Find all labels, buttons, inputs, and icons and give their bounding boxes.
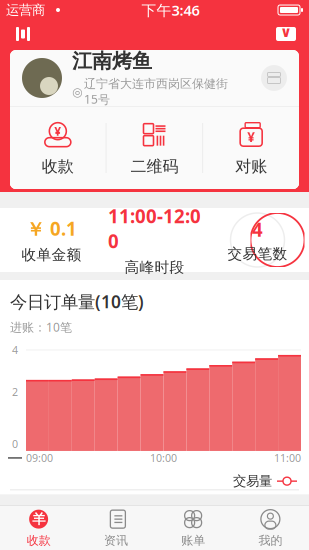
staticText: 0 (12, 437, 18, 451)
staticText: 下午3:46 (141, 0, 199, 20)
button[interactable]: 羊 (0, 506, 77, 550)
button[interactable]: 江南烤鱼 (10, 50, 299, 106)
staticText: 交易量 (233, 473, 272, 489)
staticText: 高峰时段 (124, 258, 184, 276)
button[interactable]: 二维码 (107, 107, 202, 189)
staticText: 二维码 (130, 157, 178, 176)
staticText: 收款 (27, 533, 51, 548)
staticText: 10:00 (150, 451, 177, 465)
staticText: 羊 (32, 511, 45, 527)
staticText: 运营商 (6, 2, 45, 18)
staticText: ∨ (280, 24, 292, 40)
staticText: ◎ (72, 85, 82, 99)
staticText: 交易笔数 (227, 245, 287, 263)
button[interactable]: 账单 (154, 506, 232, 550)
staticText: 11:00-12:00 (108, 204, 201, 253)
staticText: 4 (252, 217, 263, 242)
staticText: 2 (12, 385, 18, 399)
staticText: 账单 (181, 533, 205, 548)
staticText: 辽宁省大连市西岗区保健街15号 (84, 76, 228, 107)
staticText: 收单金额 (21, 246, 81, 264)
staticText: ¥ (247, 128, 255, 146)
button[interactable]: 首页 (8, 23, 38, 45)
staticText: 我的 (258, 533, 282, 548)
staticText: ¥ (54, 123, 61, 139)
staticText: 4 (12, 343, 18, 357)
staticText: 对账 (235, 157, 267, 176)
staticText: ￥ 0.1 (26, 216, 77, 241)
button[interactable]: 我的 (232, 506, 309, 550)
button[interactable]: ¥ (203, 107, 299, 189)
staticText: 收款 (42, 157, 74, 176)
button[interactable]: 消息 (271, 23, 301, 45)
button[interactable]: ¥ (10, 107, 106, 189)
staticText: 资讯 (104, 533, 128, 548)
staticText: 今日订单量(10笔) (10, 290, 144, 313)
staticText: 11:00 (274, 451, 301, 465)
staticText: 09:00 (26, 451, 53, 465)
button[interactable]: 资讯 (77, 506, 154, 550)
staticText: 江南烤鱼 (72, 49, 152, 73)
staticText: 进账：10笔 (10, 319, 72, 335)
